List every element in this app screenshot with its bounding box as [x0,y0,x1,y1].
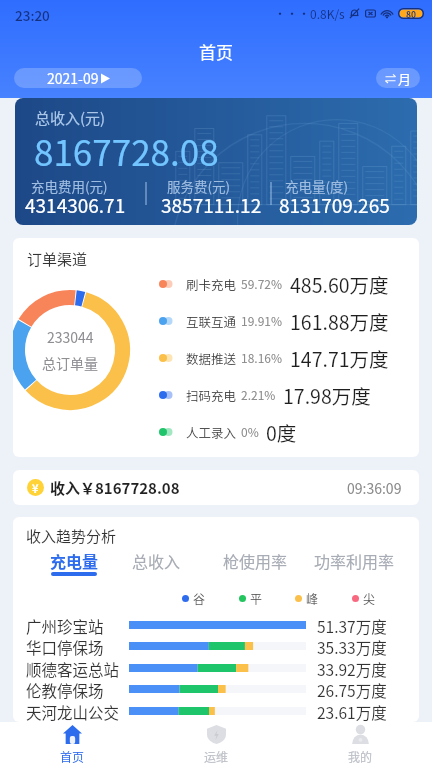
button[interactable]: 我的 [288,722,432,768]
staticText: 华口停保场 [26,636,104,657]
staticText: 总收入(元) [35,107,106,129]
button[interactable]: 广州珍宝站 [13,613,419,634]
staticText: 3857111.12 [161,191,262,219]
button[interactable]: ¥ [13,470,419,505]
button[interactable]: 枪使用率 [215,549,295,581]
staticText: 伦教停保场 [26,679,104,700]
staticText: 161.88万度 [290,307,389,335]
staticText: 19.91% [241,312,283,329]
staticText: 收入￥8167728.08 [50,477,180,499]
staticText: 23:20 [15,5,50,25]
staticText: •••0.8K/s [274,5,345,22]
staticText: 运维 [204,748,229,765]
staticText: 4314306.71 [25,191,126,219]
staticText: 59.72% [241,275,283,292]
button[interactable]: 互联互通 [159,302,419,339]
button[interactable]: 2021-09 [14,68,142,88]
staticText: 总订单量 [42,353,98,373]
staticText: 平 [250,590,263,607]
staticText: 首页 [60,748,85,765]
button[interactable]: 峰 [295,590,319,607]
staticText: 订单渠道 [27,248,88,270]
staticText: 485.60万度 [290,270,389,298]
staticText: 人工录入 [186,423,237,441]
staticText: 09:36:09 [347,478,402,498]
staticText: ¥ [32,480,39,496]
button[interactable]: 人工录入 [159,413,419,450]
button[interactable]: 功率利用率 [314,549,394,581]
staticText: 数据推送 [186,349,237,367]
button[interactable]: 刷卡充电 [159,265,419,302]
staticText: 17.98万度 [283,381,371,409]
staticText: 谷 [193,590,206,607]
staticText: 天河龙山公交 [26,701,120,722]
staticText: 2.21% [241,386,276,403]
staticText: 总收入 [132,549,181,572]
button[interactable]: 尖 [352,590,376,607]
staticText: 35.33万度 [317,636,387,657]
button[interactable]: 充电量 [34,549,114,581]
button[interactable]: 容里停保场 [13,720,419,722]
staticText: 服务费(元) [167,176,231,196]
staticText: 8131709.265 [279,191,390,219]
staticText: 互联互通 [186,312,237,330]
staticText: 2021-09 [47,68,99,88]
staticText: 月 [398,69,412,88]
staticText: 顺德客运总站 [26,658,120,679]
staticText: 8167728.08 [34,125,219,176]
staticText: 枪使用率 [223,549,288,572]
button[interactable]: 天河龙山公交 [13,699,419,720]
staticText: 26.75万度 [317,679,387,700]
staticText: 收入趋势分析 [26,525,117,547]
staticText: 刷卡充电 [186,275,237,293]
staticText: 充电量(度) [285,176,349,196]
staticText: 18.16% [241,349,283,366]
button[interactable]: 谷 [182,590,206,607]
staticText: 0% [241,423,259,440]
button[interactable]: 伦教停保场 [13,677,419,698]
staticText: 0度 [266,418,297,446]
button[interactable]: 平 [239,590,263,607]
staticText: 51.37万度 [317,615,387,636]
button[interactable]: 扫码充电 [159,376,419,413]
staticText: 广州珍宝站 [26,615,104,636]
staticText: 尖 [363,590,376,607]
staticText: 147.71万度 [290,344,389,372]
button[interactable]: 切换月 [376,68,420,88]
staticText: 功率利用率 [314,549,394,572]
staticText: 峰 [306,590,319,607]
staticText: 33.92万度 [317,658,387,679]
staticText: 充电量 [50,549,99,572]
staticText: 我的 [348,748,373,765]
button[interactable]: 首页 [0,722,144,768]
button[interactable]: 数据推送 [159,339,419,376]
staticText: 首页 [199,39,233,64]
button[interactable]: 华口停保场 [13,634,419,655]
staticText: 扫码充电 [186,386,237,404]
staticText: 233044 [47,327,94,347]
button[interactable]: 运维 [144,722,288,768]
button[interactable]: 总收入 [116,549,196,581]
staticText: 23.61万度 [317,701,387,722]
staticText: 充电费用(元) [31,176,108,196]
staticText: 80 [406,8,417,19]
button[interactable]: 顺德客运总站 [13,656,419,677]
